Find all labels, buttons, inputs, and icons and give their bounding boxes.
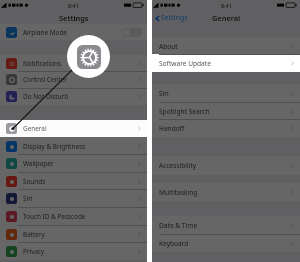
button[interactable]: Battery (0, 225, 147, 243)
staticText: Wallpaper (23, 159, 54, 168)
staticText: General (212, 13, 241, 23)
button[interactable]: Privacy (0, 242, 147, 260)
button[interactable]: Airplane Mode (0, 24, 147, 40)
staticText: Handoff (159, 124, 185, 133)
button[interactable]: Settings (154, 13, 188, 23)
button[interactable]: About (152, 37, 300, 55)
staticText: Sounds (23, 177, 46, 186)
staticText: Siri (23, 194, 33, 203)
staticText: Control Center (23, 75, 67, 84)
staticText: Spotlight Search (159, 107, 210, 116)
staticText: Airplane Mode (23, 28, 67, 37)
staticText: 8:41 (68, 2, 79, 9)
staticText: Do Not Disturb (23, 92, 69, 101)
staticText: Siri (159, 89, 169, 98)
staticText: About (159, 42, 178, 51)
staticText: Multitasking (159, 188, 198, 197)
button[interactable]: Touch ID & Passcode (0, 207, 147, 225)
button[interactable]: Handoff (152, 119, 300, 137)
staticText: Software Update (159, 59, 211, 68)
staticText: Display & Brightness (23, 142, 86, 151)
staticText: Privacy (23, 247, 45, 256)
staticText: Settings (59, 13, 89, 23)
button[interactable]: Keyboard (152, 234, 300, 252)
staticText: Settings (161, 13, 188, 23)
button[interactable]: Display & Brightness (0, 137, 147, 155)
staticText: Battery (23, 230, 45, 239)
staticText: Date & Time (159, 221, 198, 230)
button[interactable]: Wallpaper (0, 154, 147, 172)
button[interactable]: General (0, 120, 147, 137)
button[interactable]: Control Center (0, 71, 147, 88)
button[interactable]: Software Update (152, 54, 300, 72)
button[interactable]: Accessibility (152, 156, 300, 175)
staticText: General (23, 124, 47, 133)
button[interactable]: Sounds (0, 172, 147, 190)
staticText: Accessibility (159, 161, 197, 170)
staticText: Touch ID & Passcode (23, 212, 86, 221)
staticText: 8:41 (221, 2, 232, 9)
button[interactable]: Do Not Disturb (0, 88, 147, 105)
button[interactable]: Multitasking (152, 183, 300, 201)
button[interactable]: Date & Time (152, 216, 300, 234)
staticText: Keyboard (159, 239, 189, 248)
button[interactable]: Siri (152, 84, 300, 102)
button[interactable]: Notifications (0, 55, 147, 72)
button[interactable]: Siri (0, 189, 147, 207)
staticText: Notifications (23, 59, 62, 68)
button[interactable]: Spotlight Search (152, 102, 300, 120)
